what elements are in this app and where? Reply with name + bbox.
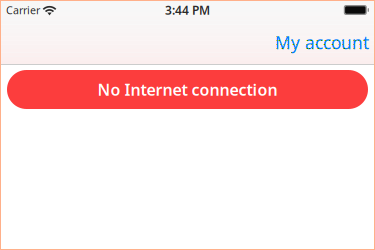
- button[interactable]: No Internet connection: [7, 70, 368, 109]
- staticText: 3:44 PM: [165, 2, 210, 18]
- staticText: Carrier: [6, 3, 40, 17]
- staticText: No Internet connection: [97, 79, 277, 100]
- staticText: My account: [275, 31, 369, 54]
- button[interactable]: My account: [265, 20, 375, 60]
